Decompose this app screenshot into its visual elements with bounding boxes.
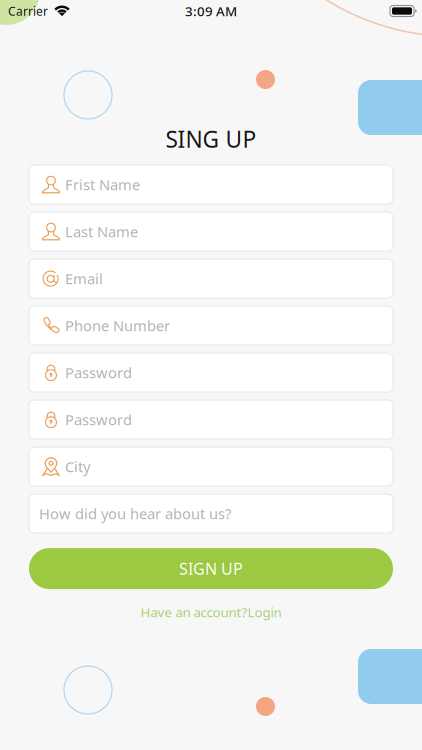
staticText: SING UP [165, 124, 256, 154]
staticText: 3:09 AM [185, 2, 237, 20]
button[interactable]: Have an account?Login [140, 603, 281, 621]
button[interactable]: Frist Name [29, 165, 393, 204]
button[interactable]: Phone Number [29, 306, 393, 345]
button[interactable]: Last Name [29, 212, 393, 251]
button[interactable]: How did you hear about us? [29, 494, 393, 533]
button[interactable]: SIGN UP [29, 548, 393, 589]
staticText: Email [65, 269, 103, 288]
staticText: Password [65, 410, 132, 429]
button[interactable]: Password [29, 353, 393, 392]
staticText: Frist Name [65, 175, 140, 194]
button[interactable]: City [29, 447, 393, 486]
button[interactable]: Password [29, 400, 393, 439]
staticText: How did you hear about us? [39, 504, 231, 523]
staticText: Last Name [65, 222, 138, 241]
staticText: Have an account?Login [140, 603, 281, 621]
staticText: City [65, 457, 90, 476]
button[interactable]: Email [29, 259, 393, 298]
staticText: SIGN UP [179, 558, 243, 579]
staticText: Password [65, 363, 132, 382]
staticText: Carrier [8, 3, 48, 19]
staticText: Phone Number [65, 316, 170, 335]
